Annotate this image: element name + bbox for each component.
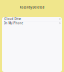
staticText: iCloud Drive xyxy=(4,17,22,21)
staticText: On My iPhone xyxy=(4,21,24,25)
staticText: Recently Deleted xyxy=(19,6,44,9)
button[interactable]: iCloud Drive xyxy=(2,17,62,21)
button[interactable]: On My iPhone xyxy=(2,21,62,25)
